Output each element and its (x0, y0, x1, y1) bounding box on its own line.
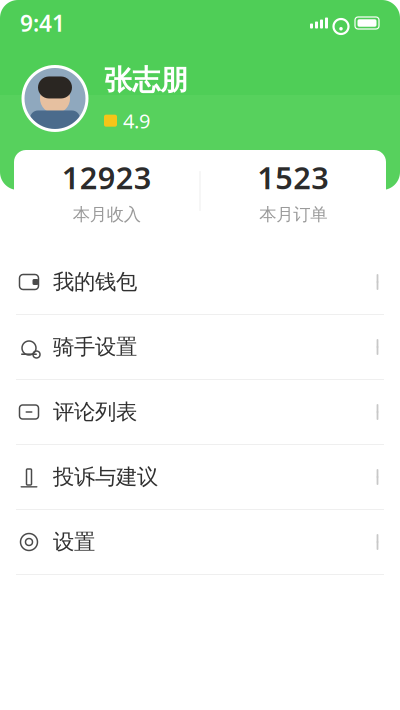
staticText: 评论列表 (53, 399, 137, 425)
button[interactable]: 评论列表 (0, 380, 400, 445)
staticText: 我的钱包 (53, 269, 137, 295)
staticText: 骑手设置 (53, 334, 137, 360)
staticText: 1523 (257, 157, 329, 198)
staticText: 投诉与建议 (53, 464, 158, 490)
button[interactable]: 我的钱包 (0, 250, 400, 315)
button[interactable]: Profile photo (20, 63, 90, 133)
staticText: 张志朋 (104, 63, 188, 97)
button[interactable]: 骑手设置 (0, 315, 400, 380)
staticText: 4.9 (123, 107, 150, 134)
staticText: 设置 (53, 529, 95, 555)
staticText: 12923 (62, 157, 152, 198)
button[interactable]: 设置 (0, 510, 400, 575)
staticText: 本月订单 (259, 204, 327, 225)
staticText: 本月收入 (73, 204, 141, 225)
staticText: 9:41 (20, 8, 65, 38)
button[interactable]: 投诉与建议 (0, 445, 400, 510)
